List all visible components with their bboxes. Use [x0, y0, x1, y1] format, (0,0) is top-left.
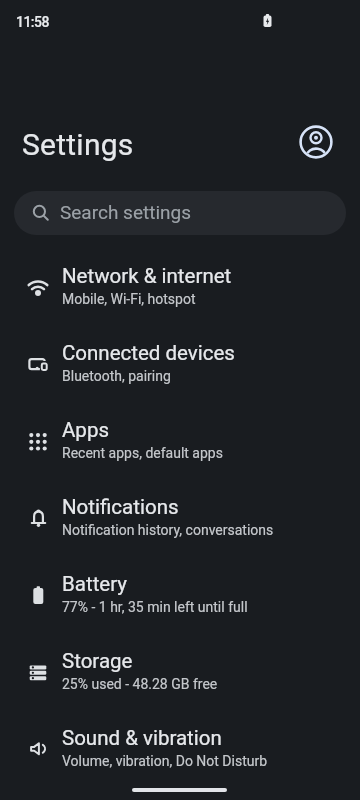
staticText: Storage: [62, 649, 133, 673]
staticText: Recent apps, default apps: [62, 445, 223, 461]
button[interactable]: Connected devices: [0, 324, 360, 401]
button[interactable]: Apps: [0, 401, 360, 478]
button[interactable]: Sound & vibration: [0, 709, 360, 786]
button[interactable]: Network & internet: [0, 247, 360, 324]
staticText: Apps: [62, 418, 109, 442]
staticText: 11:58: [16, 14, 49, 30]
button[interactable]: Battery: [0, 555, 360, 632]
staticText: Network & internet: [62, 264, 232, 288]
staticText: Volume, vibration, Do Not Disturb: [62, 753, 268, 769]
button[interactable]: [297, 123, 335, 161]
staticText: Mobile, Wi-Fi, hotspot: [62, 291, 196, 307]
staticText: Connected devices: [62, 341, 235, 365]
staticText: Search settings: [60, 201, 191, 223]
staticText: Notifications: [62, 495, 179, 519]
button[interactable]: Search settings: [14, 191, 346, 235]
staticText: Notification history, conversations: [62, 522, 274, 538]
staticText: Sound & vibration: [62, 726, 222, 750]
staticText: Settings: [22, 127, 134, 162]
button[interactable]: Notifications: [0, 478, 360, 555]
staticText: Battery: [62, 572, 128, 596]
button[interactable]: Storage: [0, 632, 360, 709]
staticText: Bluetooth, pairing: [62, 368, 171, 384]
staticText: 25% used - 48.28 GB free: [62, 676, 218, 692]
staticText: 77% - 1 hr, 35 min left until full: [62, 599, 248, 615]
